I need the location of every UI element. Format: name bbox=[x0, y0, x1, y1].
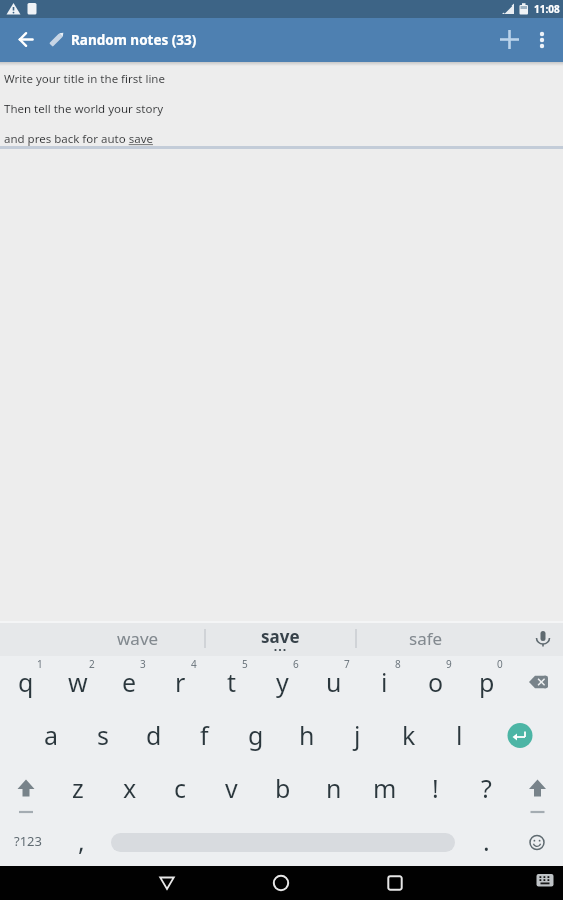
button[interactable]: n bbox=[308, 762, 359, 815]
staticText: wave bbox=[117, 627, 159, 650]
staticText: t bbox=[227, 665, 237, 699]
button[interactable] bbox=[530, 23, 554, 57]
button[interactable]: e bbox=[104, 656, 155, 709]
staticText: 4 bbox=[191, 657, 197, 671]
staticText: i bbox=[381, 665, 388, 699]
button[interactable]: i bbox=[359, 656, 410, 709]
staticText: n bbox=[326, 771, 342, 805]
staticText: Random notes (33) bbox=[71, 31, 197, 49]
staticText: w bbox=[68, 665, 88, 699]
staticText: 5 bbox=[242, 657, 248, 671]
button[interactable] bbox=[527, 869, 563, 897]
staticText: v bbox=[225, 771, 238, 805]
staticText: l bbox=[456, 718, 463, 752]
button[interactable]: o bbox=[410, 656, 461, 709]
staticText: p bbox=[479, 665, 495, 699]
button[interactable]: ?123 bbox=[0, 815, 56, 866]
staticText: u bbox=[326, 665, 342, 699]
staticText: 7 bbox=[344, 657, 350, 671]
button[interactable]: p bbox=[461, 656, 512, 709]
staticText: m bbox=[373, 771, 397, 805]
staticText: 0 bbox=[497, 657, 503, 671]
button[interactable]: . bbox=[461, 815, 511, 866]
button[interactable]: u bbox=[308, 656, 359, 709]
button[interactable]: f bbox=[179, 709, 230, 762]
button[interactable] bbox=[0, 762, 52, 815]
staticText: s bbox=[97, 718, 109, 752]
staticText: ! bbox=[432, 771, 439, 805]
staticText: d bbox=[146, 718, 162, 752]
staticText: , bbox=[78, 824, 85, 858]
button[interactable]: d bbox=[128, 709, 179, 762]
staticText: ?123 bbox=[14, 832, 42, 850]
staticText: Write your title in the first line bbox=[4, 71, 165, 87]
staticText: h bbox=[299, 718, 315, 752]
button[interactable]: y bbox=[257, 656, 308, 709]
button[interactable]: t bbox=[206, 656, 257, 709]
button[interactable]: a bbox=[26, 709, 77, 762]
staticText: q bbox=[18, 665, 34, 699]
staticText: c bbox=[174, 771, 187, 805]
staticText: 11:08 bbox=[534, 2, 560, 16]
staticText: y bbox=[276, 665, 289, 699]
button[interactable] bbox=[45, 27, 69, 51]
button[interactable] bbox=[512, 762, 563, 815]
staticText: o bbox=[428, 665, 444, 699]
button[interactable]: ? bbox=[461, 762, 512, 815]
button[interactable]: q bbox=[0, 656, 52, 709]
staticText: j bbox=[354, 718, 361, 752]
staticText: g bbox=[248, 718, 264, 752]
button[interactable] bbox=[493, 23, 526, 57]
button[interactable]: m bbox=[359, 762, 410, 815]
staticText: f bbox=[200, 718, 209, 752]
button[interactable]: l bbox=[434, 709, 485, 762]
button[interactable]: k bbox=[383, 709, 434, 762]
button[interactable]: x bbox=[104, 762, 155, 815]
staticText: z bbox=[72, 771, 84, 805]
staticText: safe bbox=[409, 627, 443, 650]
staticText: 6 bbox=[293, 657, 299, 671]
button[interactable]: j bbox=[332, 709, 383, 762]
button[interactable]: b bbox=[257, 762, 308, 815]
button[interactable] bbox=[147, 869, 187, 897]
button[interactable]: c bbox=[155, 762, 206, 815]
button[interactable]: , bbox=[56, 815, 106, 866]
button[interactable]: safe bbox=[386, 623, 466, 653]
staticText: x bbox=[123, 771, 137, 805]
staticText: 2 bbox=[89, 657, 95, 671]
staticText: 3 bbox=[140, 657, 146, 671]
button[interactable]: s bbox=[77, 709, 128, 762]
button[interactable] bbox=[511, 815, 563, 866]
button[interactable] bbox=[485, 709, 563, 762]
button[interactable]: g bbox=[230, 709, 281, 762]
staticText: k bbox=[402, 718, 416, 752]
button[interactable]: h bbox=[281, 709, 332, 762]
button[interactable] bbox=[261, 869, 301, 897]
staticText: ? bbox=[481, 771, 492, 805]
button[interactable]: save bbox=[240, 623, 320, 653]
button[interactable] bbox=[10, 23, 42, 57]
staticText: 1 bbox=[37, 657, 43, 671]
staticText: Then tell the world your story bbox=[4, 101, 164, 117]
staticText: save bbox=[261, 625, 300, 648]
button[interactable]: wave bbox=[98, 623, 178, 653]
staticText: . bbox=[483, 824, 490, 858]
button[interactable]: z bbox=[52, 762, 104, 815]
button[interactable] bbox=[523, 623, 563, 653]
staticText: b bbox=[275, 771, 291, 805]
button[interactable]: v bbox=[206, 762, 257, 815]
staticText: a bbox=[44, 718, 59, 752]
staticText: e bbox=[122, 665, 137, 699]
button[interactable]: w bbox=[52, 656, 104, 709]
button[interactable]: r bbox=[155, 656, 206, 709]
button[interactable] bbox=[512, 656, 563, 709]
staticText: 9 bbox=[446, 657, 452, 671]
staticText: r bbox=[175, 665, 186, 699]
staticText: and pres back for auto save bbox=[4, 131, 153, 147]
staticText: 8 bbox=[395, 657, 401, 671]
button[interactable] bbox=[375, 869, 415, 897]
button[interactable]: ! bbox=[410, 762, 461, 815]
